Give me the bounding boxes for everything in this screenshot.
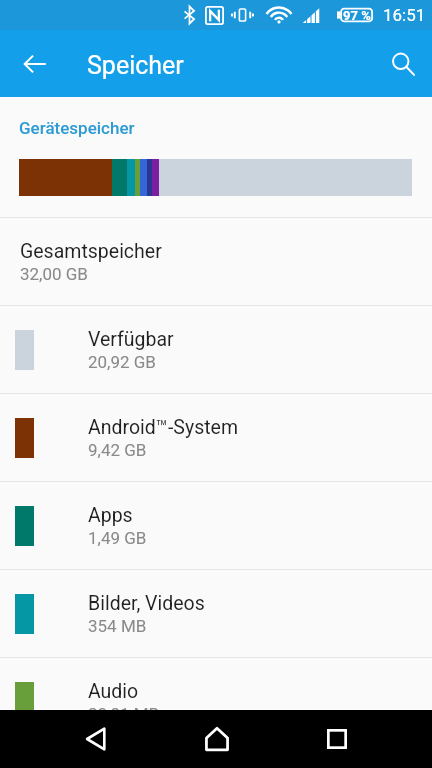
staticText: 20,92 GB bbox=[88, 352, 156, 372]
button[interactable]: Verfügbar bbox=[0, 306, 432, 393]
button[interactable]: Audio bbox=[0, 658, 432, 710]
button[interactable]: Back bbox=[17, 46, 53, 82]
staticText: 32,00 GB bbox=[20, 264, 88, 284]
staticText: Speicher bbox=[87, 51, 184, 80]
staticText: 16:51 bbox=[383, 5, 426, 25]
staticText: Gerätespeicher bbox=[19, 118, 135, 138]
button[interactable]: Bilder, Videos bbox=[0, 570, 432, 657]
staticText: Verfügbar bbox=[88, 328, 174, 351]
staticText: Apps bbox=[88, 504, 133, 527]
button[interactable]: Gesamtspeicher bbox=[0, 218, 432, 305]
staticText: Bilder, Videos bbox=[88, 592, 205, 615]
button[interactable]: Recent apps bbox=[307, 710, 366, 768]
staticText: Gesamtspeicher bbox=[20, 240, 162, 263]
button[interactable]: Apps bbox=[0, 482, 432, 569]
staticText: Android™-System bbox=[88, 416, 239, 439]
staticText: 97 % bbox=[343, 8, 371, 23]
button[interactable]: Search bbox=[385, 46, 421, 82]
button[interactable]: Back bbox=[66, 710, 125, 768]
staticText: 1,49 GB bbox=[88, 528, 147, 548]
button[interactable]: Home bbox=[187, 710, 246, 768]
staticText: 354 MB bbox=[88, 616, 147, 636]
staticText: 9,42 GB bbox=[88, 440, 147, 460]
button[interactable]: Android™-System bbox=[0, 394, 432, 481]
staticText: Audio bbox=[88, 680, 139, 703]
staticText: 20,01 MB bbox=[88, 704, 160, 710]
